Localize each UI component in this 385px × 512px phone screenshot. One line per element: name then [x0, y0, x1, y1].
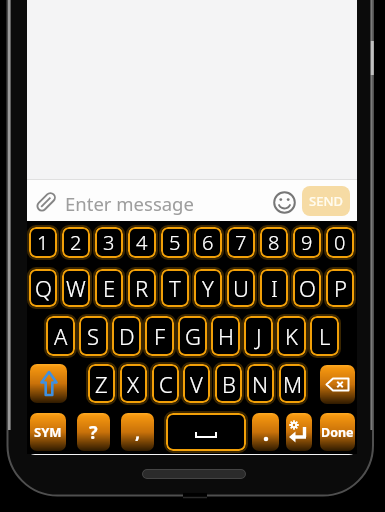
button[interactable]: J: [244, 316, 273, 356]
staticText: M: [283, 369, 303, 399]
button[interactable]: I: [260, 269, 288, 307]
staticText: Z: [95, 369, 108, 399]
button[interactable]: 0: [326, 227, 354, 258]
staticText: ,: [135, 420, 141, 445]
button[interactable]: Done: [320, 413, 355, 451]
staticText: C: [159, 369, 173, 399]
button[interactable]: [320, 365, 355, 404]
button[interactable]: E: [95, 269, 123, 307]
staticText: A: [54, 321, 68, 351]
staticText: 5: [169, 229, 181, 256]
button[interactable]: V: [183, 364, 210, 403]
button[interactable]: 4: [128, 227, 156, 258]
button[interactable]: P: [326, 269, 354, 307]
staticText: B: [222, 369, 236, 399]
staticText: 4: [136, 229, 148, 256]
button[interactable]: O: [293, 269, 321, 307]
staticText: K: [285, 321, 298, 351]
staticText: P: [334, 273, 347, 303]
staticText: Q: [35, 273, 52, 303]
staticText: Enter message: [65, 191, 194, 216]
button[interactable]: G: [178, 316, 207, 356]
button[interactable]: U: [227, 269, 255, 307]
button[interactable]: M: [279, 364, 306, 403]
staticText: ?: [89, 420, 98, 445]
staticText: D: [119, 321, 135, 351]
button[interactable]: 1: [29, 227, 57, 258]
button[interactable]: S: [79, 316, 108, 356]
staticText: Y: [202, 273, 214, 303]
button[interactable]: H: [211, 316, 240, 356]
button[interactable]: W: [62, 269, 90, 307]
staticText: Done: [321, 424, 354, 441]
staticText: S: [87, 321, 100, 351]
staticText: X: [127, 369, 140, 399]
button[interactable]: 5: [161, 227, 189, 258]
button[interactable]: 7: [227, 227, 255, 258]
staticText: 8: [268, 229, 280, 256]
staticText: J: [256, 321, 262, 351]
button[interactable]: K: [277, 316, 306, 356]
staticText: R: [135, 273, 149, 303]
button[interactable]: 6: [194, 227, 222, 258]
button[interactable]: [273, 191, 296, 214]
button[interactable]: 3: [95, 227, 123, 258]
button[interactable]: D: [112, 316, 141, 356]
button[interactable]: C: [152, 364, 179, 403]
staticText: O: [299, 273, 316, 303]
button[interactable]: [166, 413, 246, 451]
button[interactable]: SYM: [30, 413, 66, 451]
staticText: T: [169, 273, 181, 303]
staticText: 7: [235, 229, 247, 256]
button[interactable]: L: [310, 316, 339, 356]
staticText: 2: [70, 229, 82, 256]
staticText: 9: [301, 229, 313, 256]
button[interactable]: F: [145, 316, 174, 356]
staticText: 6: [202, 229, 214, 256]
button[interactable]: 8: [260, 227, 288, 258]
staticText: H: [218, 321, 234, 351]
button[interactable]: 2: [62, 227, 90, 258]
staticText: 1: [37, 229, 49, 256]
button[interactable]: 9: [293, 227, 321, 258]
button[interactable]: N: [247, 364, 274, 403]
staticText: N: [252, 369, 269, 399]
button[interactable]: Q: [29, 269, 57, 307]
button[interactable]: Y: [194, 269, 222, 307]
button[interactable]: R: [128, 269, 156, 307]
staticText: 3: [103, 229, 115, 256]
button[interactable]: B: [215, 364, 242, 403]
button[interactable]: ?: [77, 413, 110, 451]
button[interactable]: [34, 189, 59, 214]
staticText: SEND: [309, 192, 343, 210]
button[interactable]: A: [46, 316, 75, 356]
button[interactable]: [286, 413, 312, 451]
staticText: V: [190, 369, 203, 399]
staticText: L: [319, 321, 331, 351]
button[interactable]: [252, 413, 279, 451]
button[interactable]: SEND: [302, 186, 350, 216]
button[interactable]: ,: [121, 413, 154, 451]
staticText: SYM: [34, 423, 62, 441]
staticText: I: [271, 273, 278, 303]
staticText: U: [233, 273, 249, 303]
button[interactable]: [30, 364, 67, 403]
button[interactable]: T: [161, 269, 189, 307]
staticText: E: [103, 273, 116, 303]
button[interactable]: Z: [88, 364, 115, 403]
staticText: W: [66, 273, 86, 303]
staticText: 0: [334, 229, 346, 256]
staticText: G: [185, 321, 201, 351]
button[interactable]: X: [120, 364, 147, 403]
staticText: F: [154, 321, 166, 351]
